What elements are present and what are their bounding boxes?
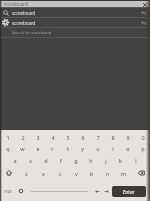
staticText: x (42, 170, 45, 177)
staticText: 8 (111, 134, 115, 141)
staticText: k (119, 157, 122, 164)
button[interactable]: scoreboard (0, 18, 150, 27)
button[interactable]: Left (93, 185, 102, 197)
staticText: e (36, 145, 40, 152)
staticText: u (96, 145, 100, 152)
staticText: 4 (51, 134, 55, 141)
staticText: q (6, 145, 10, 152)
staticText: ?123 (4, 189, 12, 194)
button[interactable]: w (15, 144, 30, 153)
button[interactable]: 7 (90, 133, 105, 142)
staticText: c (59, 170, 62, 177)
staticText: d (44, 157, 48, 164)
button[interactable]: b (84, 168, 100, 178)
staticText: 0 (141, 134, 145, 141)
staticText: 6 (81, 134, 85, 141)
button[interactable]: 2 (15, 133, 30, 142)
button[interactable]: Clear search (142, 2, 147, 7)
button[interactable]: g (68, 156, 83, 165)
button[interactable]: r (45, 144, 60, 153)
button[interactable]: y (75, 144, 90, 153)
button[interactable]: h (83, 156, 98, 165)
button[interactable]: z (18, 168, 35, 178)
button[interactable]: a (7, 156, 23, 165)
button[interactable]: Emoji (16, 185, 26, 197)
button[interactable]: n (100, 168, 116, 178)
staticText: b (90, 170, 94, 177)
staticText: t (67, 145, 69, 152)
button[interactable]: Backspace (132, 168, 150, 178)
button[interactable]: 6 (75, 133, 90, 142)
button[interactable]: Space (26, 185, 93, 197)
staticText: g (74, 157, 78, 164)
staticText: f (60, 157, 62, 164)
button[interactable]: 3 (30, 133, 45, 142)
button[interactable]: Shift (0, 168, 18, 178)
button[interactable]: u (90, 144, 105, 153)
staticText: z (25, 170, 28, 177)
staticText: s (29, 157, 32, 164)
staticText: Enter (123, 189, 135, 195)
button[interactable]: s (23, 156, 38, 165)
button[interactable]: m (116, 168, 132, 178)
button[interactable]: v (68, 168, 84, 178)
button[interactable]: Insert suggestion (139, 9, 147, 17)
button[interactable]: Enter (112, 186, 146, 197)
staticText: r (51, 145, 54, 152)
button[interactable]: k (113, 156, 128, 165)
staticText: scoreboard (12, 20, 36, 26)
staticText: scoreboard (4, 1, 28, 7)
button[interactable]: Search for scoreboard (0, 28, 150, 37)
staticText: l (135, 157, 137, 164)
staticText: p (141, 145, 145, 152)
staticText: a (13, 157, 17, 164)
staticText: n (106, 170, 110, 177)
button[interactable]: 5 (60, 133, 75, 142)
button[interactable]: x (35, 168, 52, 178)
button[interactable]: f (53, 156, 68, 165)
staticText: y (81, 145, 84, 152)
button[interactable]: j (98, 156, 113, 165)
staticText: 2 (21, 134, 25, 141)
button[interactable]: e (30, 144, 45, 153)
staticText: 9 (126, 134, 130, 141)
button[interactable]: d (38, 156, 53, 165)
staticText: v (75, 170, 78, 177)
staticText: m (121, 170, 127, 177)
staticText: w (20, 145, 25, 152)
staticText: 7 (96, 134, 100, 141)
button[interactable]: c (52, 168, 68, 178)
button[interactable]: 0 (135, 133, 150, 142)
button[interactable]: ?123 (0, 185, 16, 197)
staticText: 5 (66, 134, 70, 141)
button[interactable]: 8 (105, 133, 120, 142)
button[interactable]: Insert suggestion (139, 19, 147, 27)
staticText: j (105, 157, 107, 164)
button[interactable]: 1 (0, 133, 15, 142)
button[interactable]: scoreboard (0, 8, 150, 17)
staticText: i (112, 145, 114, 152)
button[interactable]: 9 (120, 133, 135, 142)
staticText: h (89, 157, 93, 164)
button[interactable]: t (60, 144, 75, 153)
button[interactable]: p (135, 144, 150, 153)
button[interactable]: 4 (45, 133, 60, 142)
button[interactable]: scoreboard (0, 1, 150, 7)
staticText: Search for scoreboard (12, 30, 52, 35)
button[interactable]: l (128, 156, 143, 165)
button[interactable]: q (0, 144, 15, 153)
staticText: 1 (6, 134, 10, 141)
button[interactable]: i (105, 144, 120, 153)
staticText: scoreboard (12, 10, 36, 16)
button[interactable]: o (120, 144, 135, 153)
button[interactable]: Right (102, 185, 111, 197)
staticText: o (126, 145, 130, 152)
staticText: 3 (36, 134, 40, 141)
